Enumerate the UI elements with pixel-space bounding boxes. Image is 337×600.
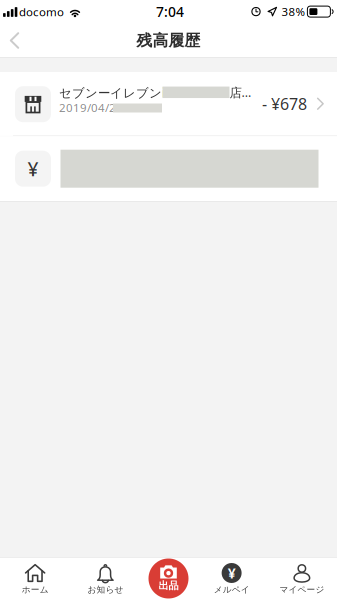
button[interactable]: ¥ <box>0 136 337 201</box>
button[interactable]: Back <box>0 23 36 58</box>
staticText: - ¥678 <box>262 93 307 114</box>
button[interactable]: セブンーイレブンi <box>0 72 337 135</box>
staticText: お知らせ <box>87 584 123 595</box>
staticText: 7:04 <box>156 2 184 21</box>
staticText: docomo <box>19 4 64 19</box>
staticText: 2019/04/2 <box>59 100 116 115</box>
button[interactable]: お知らせ <box>70 557 140 600</box>
staticText: ¥ <box>27 156 38 181</box>
staticText: 店… <box>229 84 251 101</box>
button[interactable]: ホーム <box>0 557 70 600</box>
staticText: 残高履歴 <box>136 31 200 50</box>
staticText: 出品 <box>158 579 178 592</box>
button[interactable]: ¥ <box>196 557 267 600</box>
staticText: 38% <box>281 4 305 19</box>
button[interactable]: マイページ <box>267 557 337 600</box>
button[interactable]: 出品 <box>140 557 196 600</box>
staticText: メルペイ <box>214 584 250 595</box>
staticText: ¥ <box>228 564 236 582</box>
staticText: ホーム <box>22 584 49 595</box>
staticText: マイページ <box>279 584 324 595</box>
staticText: セブンーイレブンi <box>59 84 165 101</box>
